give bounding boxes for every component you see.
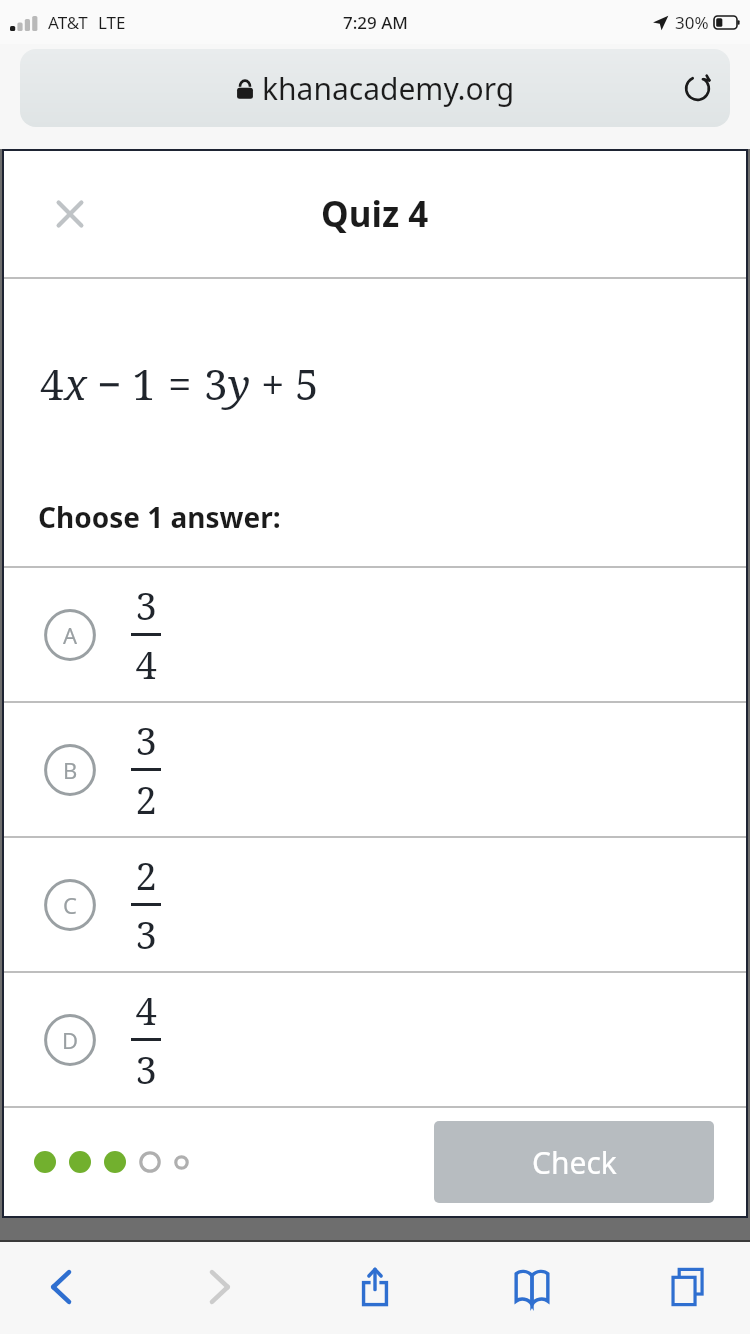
staticText: 3 bbox=[135, 1043, 157, 1095]
staticText: x bbox=[64, 355, 87, 412]
staticText: 2 bbox=[135, 773, 157, 825]
staticText: 3 bbox=[204, 355, 228, 412]
staticText: 3 bbox=[135, 908, 157, 960]
staticText: 2 bbox=[135, 849, 157, 901]
button[interactable]: Back bbox=[14, 1240, 110, 1334]
button[interactable]: B bbox=[4, 703, 746, 836]
staticText: 7:29 AM bbox=[343, 11, 408, 34]
button[interactable]: Check bbox=[434, 1121, 714, 1203]
staticText: LTE bbox=[98, 11, 126, 34]
staticText: 5 bbox=[295, 355, 319, 412]
button[interactable]: Forward bbox=[171, 1240, 267, 1334]
button[interactable]: Share bbox=[327, 1240, 423, 1334]
button[interactable]: A bbox=[4, 568, 746, 701]
staticText: 3 bbox=[135, 579, 157, 631]
staticText: Quiz 4 bbox=[321, 190, 429, 238]
staticText: khanacademy.org bbox=[262, 68, 515, 109]
staticText: + bbox=[261, 355, 285, 412]
staticText: 4 bbox=[135, 638, 157, 690]
button[interactable]: Close bbox=[44, 188, 96, 240]
button[interactable]: Reload bbox=[674, 65, 720, 111]
staticText: 3 bbox=[135, 714, 157, 766]
staticText: Check bbox=[532, 1142, 617, 1183]
staticText: 1 bbox=[132, 355, 156, 412]
staticText: D bbox=[62, 1025, 79, 1055]
staticText: A bbox=[63, 620, 78, 650]
staticText: AT&T bbox=[48, 11, 88, 34]
staticText: 30% bbox=[675, 11, 709, 34]
button[interactable]: C bbox=[4, 838, 746, 971]
staticText: = bbox=[168, 355, 192, 412]
staticText: − bbox=[97, 355, 122, 412]
staticText: Choose 1 answer: bbox=[38, 498, 281, 536]
staticText: B bbox=[63, 755, 78, 785]
button[interactable]: Bookmarks bbox=[484, 1240, 580, 1334]
staticText: 4 bbox=[135, 984, 157, 1036]
staticText: C bbox=[63, 890, 77, 920]
staticText: y bbox=[228, 355, 251, 412]
button[interactable]: khanacademy.org bbox=[20, 49, 730, 127]
button[interactable]: D bbox=[4, 973, 746, 1106]
button[interactable]: Tabs bbox=[640, 1240, 736, 1334]
staticText: 4 bbox=[40, 355, 64, 412]
